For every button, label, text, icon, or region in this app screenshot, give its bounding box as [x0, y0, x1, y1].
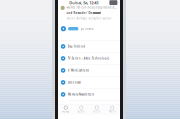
button[interactable]: Home [58, 104, 73, 115]
button[interactable]: Memory-Newsletters [58, 89, 120, 101]
button[interactable]: ge-invest [58, 25, 120, 32]
staticText: wollte ich ein neues top-trend destiny l… [66, 6, 116, 9]
staticText: Dubai, Sa, 12:43 [69, 0, 98, 5]
staticText: meine Anfrage verlaufen weiter [66, 17, 111, 20]
button[interactable]: Feed [89, 104, 104, 115]
button[interactable]: Mehr [104, 104, 120, 115]
button[interactable]: Suche [73, 104, 89, 115]
staticText: Mehr [109, 110, 116, 113]
staticText: ge-invest [80, 27, 93, 30]
button[interactable]: TV-Serien – Aktie-Technologie [58, 53, 120, 65]
button[interactable]: Bau Inderuk [58, 41, 120, 53]
staticText: Suche [77, 110, 85, 113]
button[interactable]: 4 Word-Jahresrs [58, 65, 120, 77]
button[interactable]: Attachment [109, 0, 120, 5]
staticText: Feed [93, 110, 100, 113]
staticText: Screencast [68, 81, 81, 84]
staticText: 4 Word-Jahresrs [68, 69, 89, 72]
staticText: Bau Inderuk [68, 45, 85, 48]
staticText: TV-Serien – Aktie-Technologie [68, 57, 110, 60]
staticText: Home [62, 110, 70, 113]
button[interactable]: Screencast [58, 77, 120, 89]
staticText: Memory-Newsletters [68, 93, 94, 96]
staticText: und Rascoder 'Doxxxxxxxx' [66, 11, 101, 15]
